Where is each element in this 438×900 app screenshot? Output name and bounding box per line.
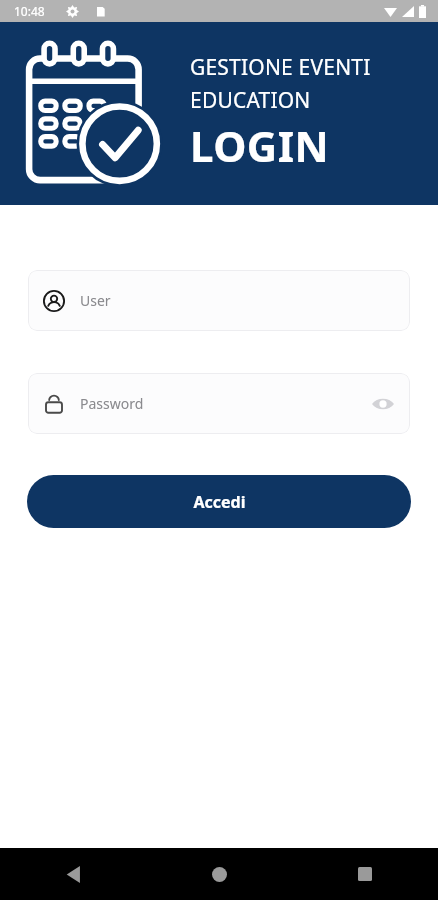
button[interactable]: User bbox=[28, 270, 410, 331]
staticText: LOGIN bbox=[190, 117, 330, 174]
staticText: EDUCATION bbox=[190, 86, 311, 115]
staticText: GESTIONE EVENTI bbox=[190, 53, 371, 82]
staticText: 10:48 bbox=[14, 3, 45, 19]
button[interactable]: Back bbox=[0, 848, 146, 900]
staticText: Accedi bbox=[193, 491, 246, 513]
staticText: User bbox=[80, 291, 111, 310]
button[interactable]: Recent apps bbox=[292, 848, 438, 900]
button[interactable]: Home bbox=[146, 848, 292, 900]
button[interactable]: Show password bbox=[370, 391, 396, 417]
button[interactable]: Accedi bbox=[27, 475, 411, 528]
staticText: Password bbox=[80, 394, 144, 413]
button[interactable]: Password bbox=[28, 373, 410, 434]
